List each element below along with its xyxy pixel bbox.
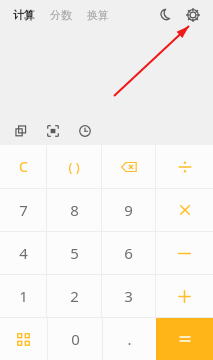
staticText: .	[127, 329, 132, 349]
button[interactable]: 计算	[10, 4, 38, 26]
button[interactable]: C	[0, 145, 46, 188]
button[interactable]: History	[72, 118, 98, 144]
button[interactable]: 2	[47, 275, 101, 317]
button[interactable]: 4	[0, 232, 46, 274]
staticText: 7	[19, 200, 28, 220]
button[interactable]: 5	[47, 232, 101, 274]
button[interactable]	[156, 145, 213, 188]
button[interactable]: 7	[0, 189, 46, 231]
staticText: 3	[124, 286, 133, 306]
staticText: 5	[70, 243, 79, 263]
button[interactable]: 6	[102, 232, 155, 274]
button[interactable]: Scan code	[0, 318, 47, 360]
button[interactable]: 1	[0, 275, 46, 317]
staticText: 1	[19, 286, 28, 306]
button[interactable]: ( )	[47, 145, 101, 188]
button[interactable]: Settings	[181, 3, 205, 27]
button[interactable]: 9	[102, 189, 155, 231]
staticText: ( )	[68, 158, 80, 176]
button[interactable]: Copy	[8, 118, 34, 144]
staticText: 4	[19, 243, 28, 263]
staticText: 8	[70, 200, 79, 220]
button[interactable]	[156, 275, 213, 317]
button[interactable]: 换算	[84, 4, 112, 26]
button[interactable]: 8	[47, 189, 101, 231]
button[interactable]	[156, 232, 213, 274]
button[interactable]	[102, 145, 155, 188]
button[interactable]: 分数	[47, 4, 75, 26]
button[interactable]: .	[103, 318, 156, 360]
staticText: 2	[70, 286, 79, 306]
button[interactable]: 3	[102, 275, 155, 317]
staticText: 0	[71, 329, 80, 349]
button[interactable]: Equals	[156, 318, 213, 360]
button[interactable]	[156, 189, 213, 231]
button[interactable]: Scan	[40, 118, 66, 144]
button[interactable]: 0	[48, 318, 102, 360]
staticText: 6	[124, 243, 133, 263]
staticText: 9	[124, 200, 133, 220]
button[interactable]: Night mode	[153, 3, 177, 27]
staticText: C	[19, 157, 28, 176]
